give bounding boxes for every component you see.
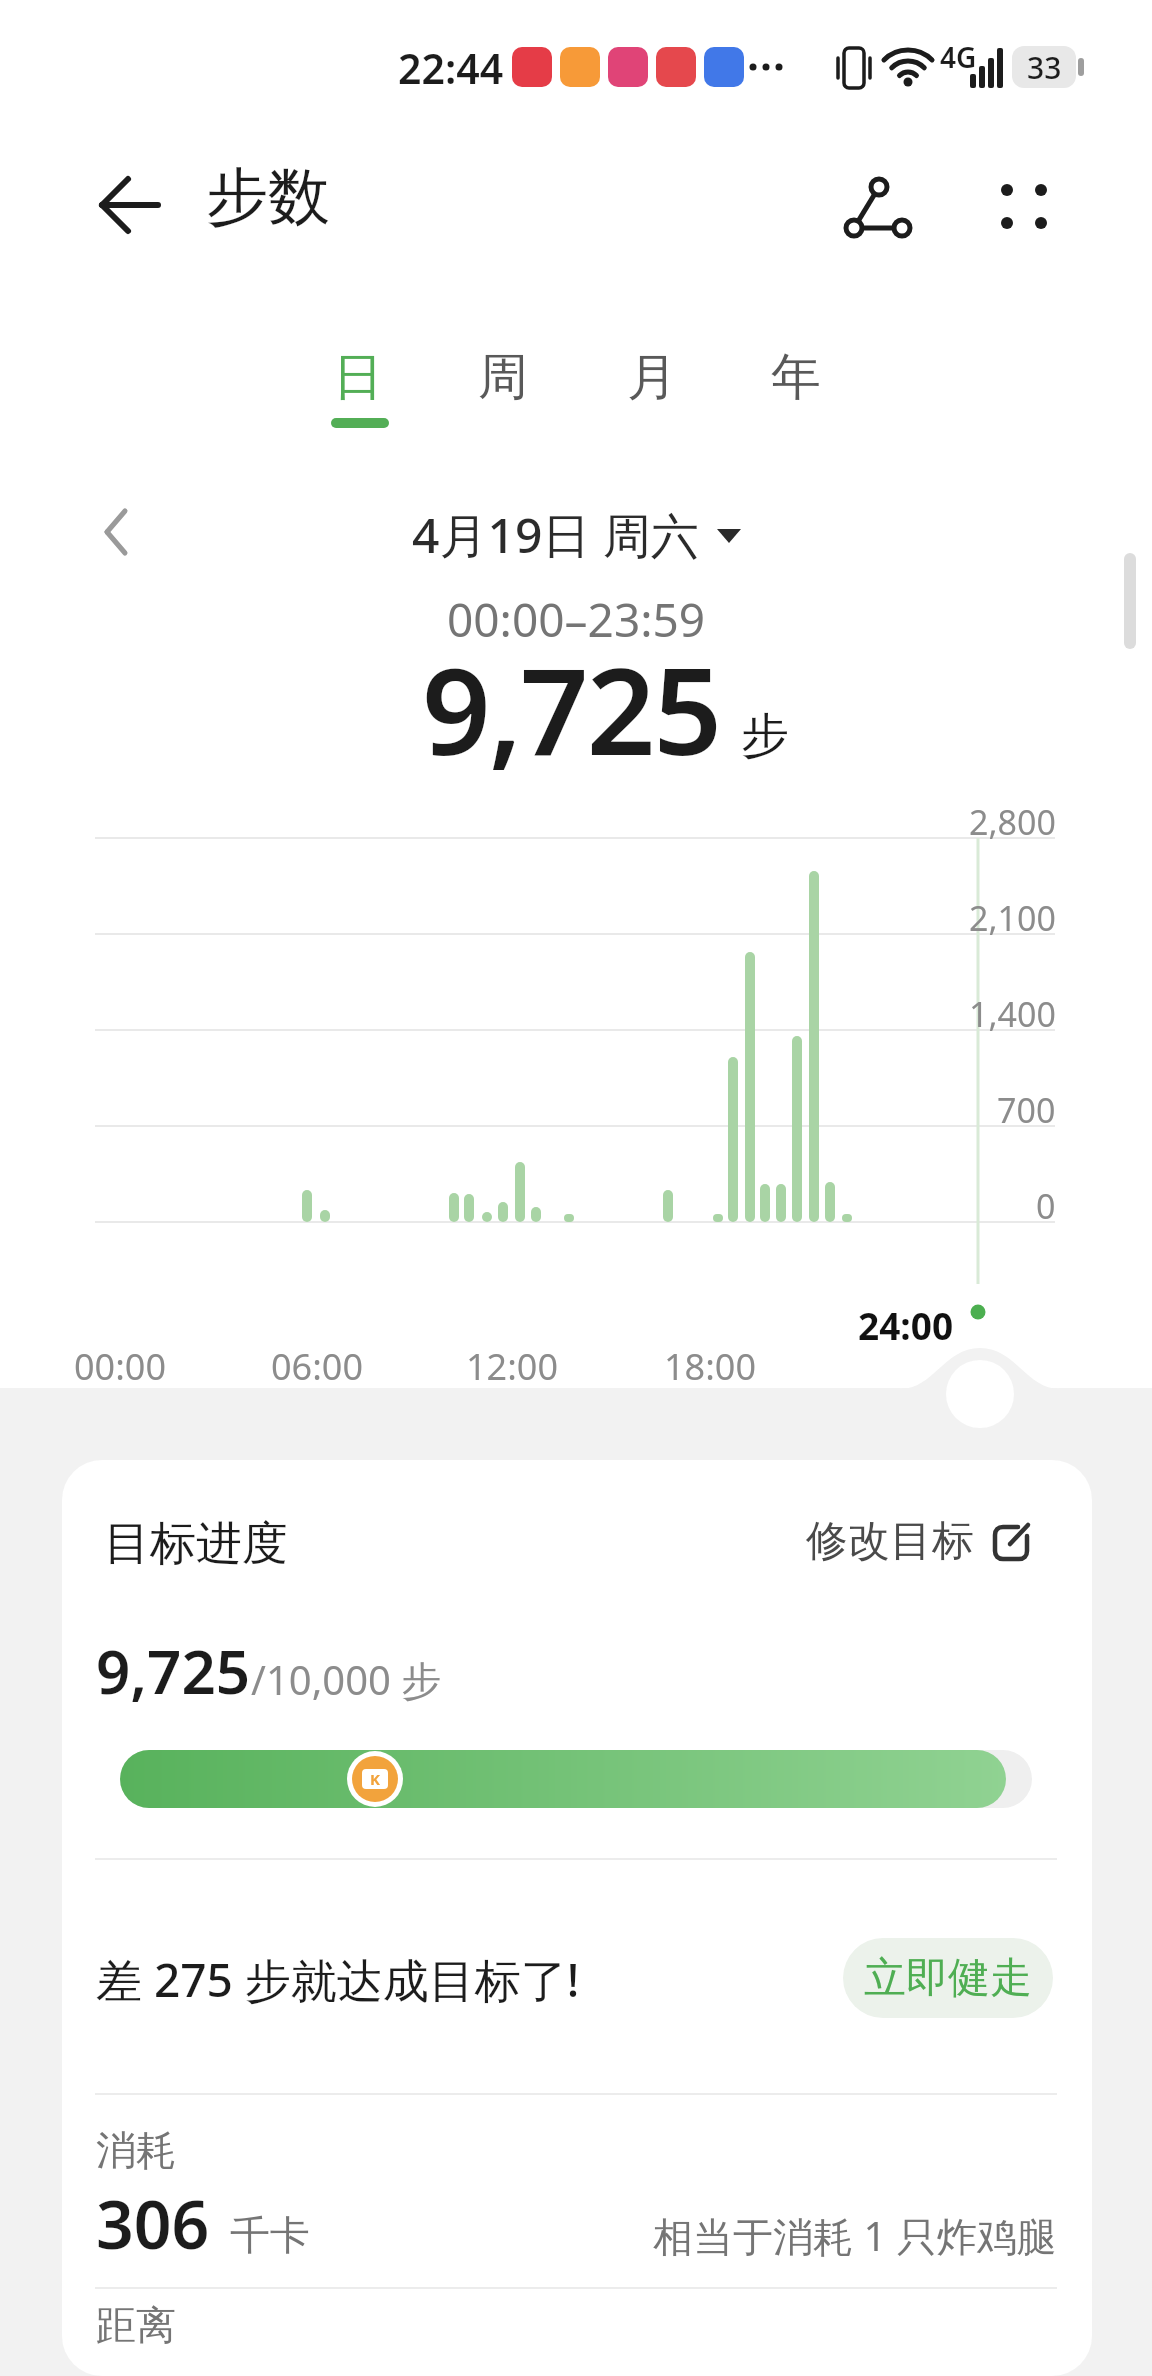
staticText: 差 275 步就达成目标了! — [96, 1948, 580, 2011]
staticText: 06:00 — [271, 1342, 364, 1391]
staticText: 4月19日 周六 — [412, 502, 699, 568]
staticText: 00:00–23:59 — [447, 588, 706, 651]
staticText: 9,725 — [422, 627, 721, 790]
staticText: 月 — [627, 346, 677, 409]
staticText: 2,800 — [969, 799, 1056, 845]
staticText: K — [370, 1769, 380, 1789]
button[interactable] — [84, 500, 148, 564]
staticText: 相当于消耗 1 只炸鸡腿 — [653, 2208, 1057, 2263]
staticText: 24:00 — [858, 1300, 954, 1350]
button[interactable] — [946, 1360, 1014, 1428]
staticText: /10,000 步 — [251, 1652, 442, 1707]
staticText: 12:00 — [466, 1342, 559, 1391]
staticText: 18:00 — [664, 1342, 757, 1391]
staticText: 9,725 — [96, 1630, 251, 1712]
staticText: 目标进度 — [104, 1515, 288, 1573]
button[interactable]: 年 — [751, 332, 841, 422]
button[interactable]: 4月19日 周六 — [0, 502, 1152, 568]
button[interactable] — [976, 158, 1072, 254]
staticText: 修改目标 — [806, 1515, 974, 1568]
staticText: 4G — [940, 38, 977, 76]
staticText: 周 — [478, 346, 528, 409]
staticText: 年 — [771, 346, 821, 409]
staticText: 消耗 — [96, 2125, 176, 2175]
staticText: 距离 — [96, 2300, 176, 2350]
staticText: 33 — [1027, 47, 1062, 88]
staticText: 立即健走 — [864, 1952, 1032, 2005]
staticText: 700 — [997, 1087, 1056, 1133]
staticText: 千卡 — [230, 2210, 310, 2260]
staticText: 0 — [1036, 1183, 1056, 1229]
button[interactable]: 修改目标 — [806, 1515, 1032, 1568]
button[interactable]: 日 — [313, 332, 403, 422]
button[interactable] — [828, 158, 924, 254]
staticText: 1,400 — [969, 991, 1056, 1037]
button[interactable]: 月 — [607, 332, 697, 422]
button[interactable] — [84, 160, 174, 250]
staticText: 日 — [333, 346, 383, 409]
button[interactable]: 周 — [458, 332, 548, 422]
button[interactable]: 立即健走 — [843, 1938, 1053, 2018]
staticText: 步数 — [206, 158, 330, 236]
staticText: 00:00 — [74, 1342, 167, 1391]
staticText: 步 — [741, 706, 789, 766]
staticText: 2,100 — [969, 895, 1056, 941]
staticText: 306 — [96, 2178, 210, 2268]
staticText: 22:44 — [398, 40, 504, 96]
